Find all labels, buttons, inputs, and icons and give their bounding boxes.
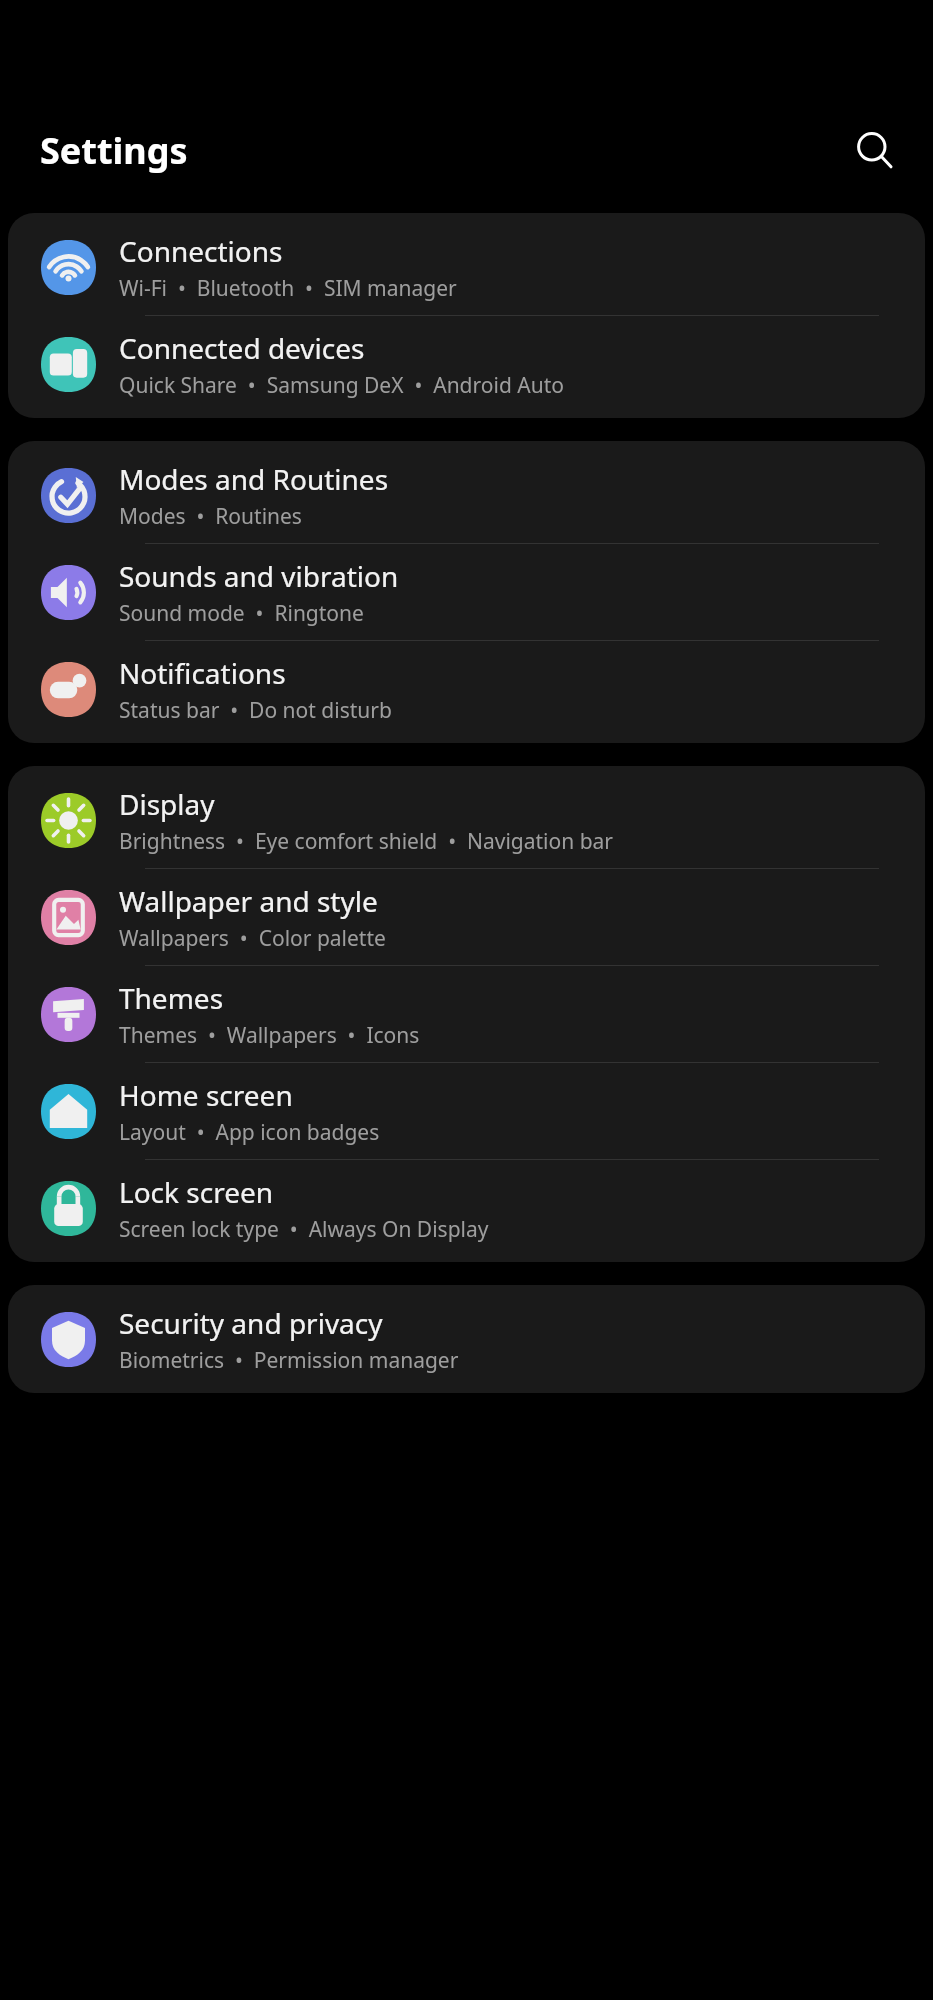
button[interactable]: Wallpaper and style: [8, 869, 925, 965]
staticText: Sounds and vibration: [119, 557, 399, 595]
staticText: Sound mode • Ringtone: [119, 599, 364, 628]
staticText: Biometrics • Permission manager: [119, 1346, 459, 1375]
staticText: Connected devices: [119, 329, 365, 367]
button[interactable]: Connections: [8, 219, 925, 315]
staticText: Themes: [119, 979, 224, 1017]
staticText: Security and privacy: [119, 1304, 383, 1342]
staticText: Brightness • Eye comfort shield • Naviga…: [119, 827, 614, 856]
staticText: Settings: [40, 126, 188, 175]
staticText: Display: [119, 785, 215, 823]
staticText: Screen lock type • Always On Display: [119, 1215, 489, 1244]
button[interactable]: Connected devices: [8, 316, 925, 412]
staticText: Home screen: [119, 1076, 293, 1114]
staticText: Wallpapers • Color palette: [119, 924, 386, 953]
button[interactable]: Sounds and vibration: [8, 544, 925, 640]
staticText: Layout • App icon badges: [119, 1118, 380, 1147]
staticText: Wi-Fi • Bluetooth • SIM manager: [119, 274, 457, 303]
button[interactable]: Lock screen: [8, 1160, 925, 1256]
button[interactable]: Notifications: [8, 641, 925, 737]
button[interactable]: Themes: [8, 966, 925, 1062]
staticText: Wallpaper and style: [119, 882, 378, 920]
staticText: Quick Share • Samsung DeX • Android Auto: [119, 371, 564, 400]
staticText: Notifications: [119, 654, 286, 692]
button[interactable]: Search: [839, 114, 911, 186]
staticText: Status bar • Do not disturb: [119, 696, 392, 725]
button[interactable]: Modes and Routines: [8, 447, 925, 543]
button[interactable]: Home screen: [8, 1063, 925, 1159]
staticText: Modes and Routines: [119, 460, 389, 498]
button[interactable]: Security and privacy: [8, 1291, 925, 1387]
button[interactable]: Display: [8, 772, 925, 868]
staticText: Lock screen: [119, 1173, 274, 1211]
staticText: Themes • Wallpapers • Icons: [119, 1021, 420, 1050]
staticText: Modes • Routines: [119, 502, 302, 531]
staticText: Connections: [119, 232, 283, 270]
